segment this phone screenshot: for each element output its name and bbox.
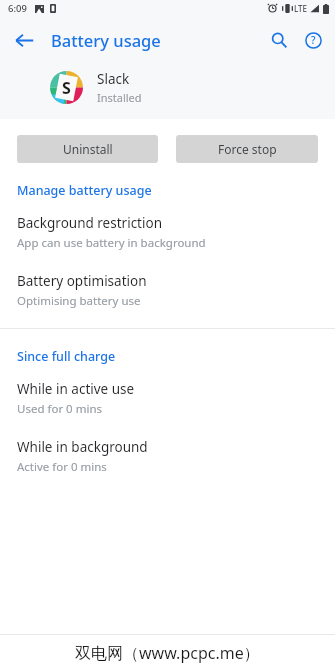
staticText: Slack [97,70,130,88]
staticText: While in active use [17,380,135,398]
staticText: Uninstall [63,141,113,157]
staticText: Background restriction [17,214,162,232]
button[interactable]: Background restriction [0,214,335,251]
button[interactable]: Back [6,22,42,58]
button[interactable]: Help [296,23,330,57]
staticText: Used for 0 mins [17,401,103,417]
staticText: Manage battery usage [17,182,152,199]
staticText: 6:09 [8,2,27,15]
staticText: Battery optimisation [17,272,147,290]
staticText: LTE [294,3,308,14]
button[interactable]: While in background [0,438,335,475]
button[interactable]: Search [262,23,296,57]
staticText: Installed [97,90,142,105]
button[interactable]: Manage battery usage [0,182,335,199]
staticText: Battery usage [51,29,161,51]
staticText: Optimising battery use [17,293,141,309]
staticText: While in background [17,438,148,456]
staticText: Active for 0 mins [17,459,107,475]
button[interactable]: Battery optimisation [0,272,335,309]
button[interactable]: Force stop [176,135,318,163]
staticText: Force stop [218,141,277,157]
staticText: ? [311,33,316,47]
staticText: App can use battery in background [17,235,206,251]
button[interactable]: Since full charge [0,348,335,365]
staticText: S [62,77,71,99]
button[interactable]: While in active use [0,380,335,417]
staticText: Since full charge [17,348,116,365]
button[interactable]: Uninstall [17,135,158,163]
staticText: 双电网（www.pcpc.me） [75,642,260,664]
